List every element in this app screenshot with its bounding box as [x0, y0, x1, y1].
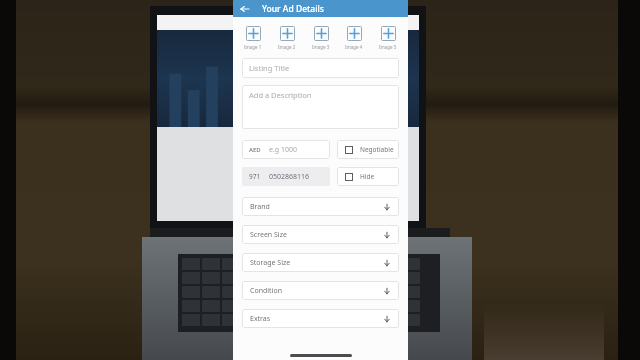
staticText: Add a Description [249, 90, 312, 100]
staticText: 0502868116 [269, 172, 310, 182]
staticText: Hide [360, 172, 375, 181]
staticText: Extras [250, 314, 383, 324]
button[interactable]: Screen Size [242, 225, 399, 244]
staticText: Storage Size [250, 258, 383, 268]
button[interactable]: Add image 5 [379, 26, 397, 50]
button[interactable]: 971 [242, 167, 330, 186]
staticText: e.g 1000 [269, 145, 297, 155]
staticText: Image 5 [379, 44, 397, 50]
staticText: Negotiable [360, 145, 394, 154]
button[interactable]: AED [242, 140, 330, 159]
staticText: AED [249, 146, 261, 154]
button[interactable]: Add a Description [242, 85, 399, 129]
button[interactable]: Add image 1 [244, 26, 262, 50]
staticText: Image 3 [312, 44, 330, 50]
staticText: Image 2 [278, 44, 296, 50]
button[interactable]: Back [238, 2, 252, 16]
button[interactable]: Hide [337, 167, 399, 186]
staticText: Condition [250, 286, 383, 296]
button[interactable]: Condition [242, 281, 399, 300]
button[interactable]: Negotiable [337, 140, 399, 159]
staticText: Listing Title [249, 63, 290, 73]
button[interactable]: Add image 4 [345, 26, 363, 50]
button[interactable]: Extras [242, 309, 399, 328]
button[interactable]: Add image 3 [312, 26, 330, 50]
button[interactable]: Storage Size [242, 253, 399, 272]
staticText: Image 1 [244, 44, 262, 50]
staticText: Image 4 [345, 44, 363, 50]
button[interactable]: Brand [242, 197, 399, 216]
button[interactable]: Listing Title [242, 58, 399, 78]
button[interactable]: Add image 2 [278, 26, 296, 50]
staticText: 971 [249, 172, 261, 181]
staticText: Your Ad Details [262, 3, 324, 15]
staticText: Brand [250, 202, 383, 212]
staticText: Screen Size [250, 230, 383, 240]
